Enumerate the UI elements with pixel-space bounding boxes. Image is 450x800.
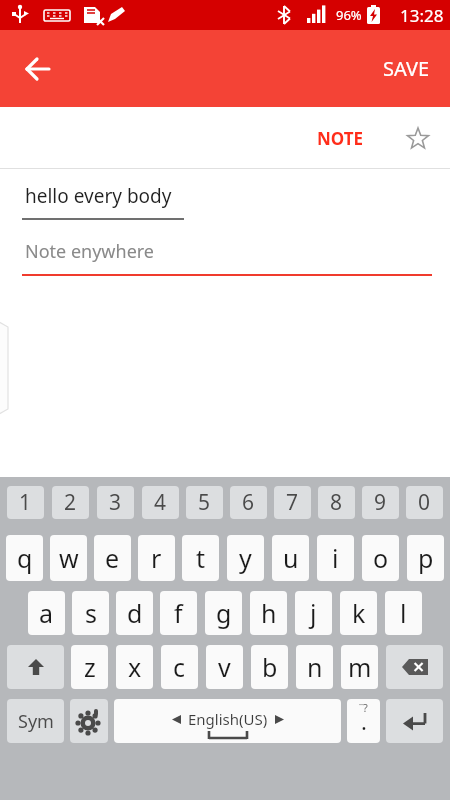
button[interactable] <box>386 699 443 743</box>
staticText: . <box>361 706 367 736</box>
staticText: 3 <box>109 488 122 517</box>
button[interactable]: 3 <box>97 486 134 519</box>
button[interactable]: 9 <box>362 486 399 519</box>
button[interactable]: 4 <box>142 486 179 519</box>
staticText: q <box>17 541 33 575</box>
staticText: hello every body <box>25 183 172 209</box>
staticText: a <box>39 596 54 630</box>
staticText: 5 <box>198 488 211 517</box>
button[interactable]: c <box>161 645 198 689</box>
staticText: 8 <box>330 488 343 517</box>
button[interactable]: 7 <box>274 486 311 519</box>
button[interactable]: g <box>205 591 242 635</box>
button[interactable]: y <box>227 535 264 581</box>
button[interactable]: Back <box>14 45 62 93</box>
staticText: f <box>174 596 183 630</box>
staticText: 13:28 <box>400 4 444 27</box>
button[interactable]: o <box>362 535 399 581</box>
staticText: NOTE <box>317 127 364 150</box>
button[interactable]: s <box>72 591 109 635</box>
staticText: p <box>418 541 434 575</box>
button[interactable]: r <box>138 535 175 581</box>
button[interactable]: f <box>160 591 197 635</box>
button[interactable] <box>70 699 108 743</box>
button[interactable]: w <box>50 535 87 581</box>
staticText: n <box>307 650 323 684</box>
staticText: b <box>262 650 278 684</box>
button[interactable]: 1 <box>7 486 44 519</box>
staticText: d <box>127 596 143 630</box>
button[interactable]: Sym <box>7 699 64 743</box>
staticText: v <box>218 650 231 684</box>
button[interactable]: Favorite <box>400 121 436 157</box>
button[interactable]: . <box>347 699 380 743</box>
staticText: c <box>173 650 186 684</box>
button[interactable]: x <box>116 645 153 689</box>
button[interactable]: a <box>28 591 65 635</box>
staticText: u <box>283 541 299 575</box>
staticText: 7 <box>286 488 299 517</box>
button[interactable]: u <box>272 535 309 581</box>
button[interactable]: v <box>206 645 243 689</box>
button[interactable]: m <box>341 645 378 689</box>
staticText: SAVE <box>383 55 430 82</box>
staticText: y <box>239 541 252 575</box>
button[interactable]: Note enywhere <box>0 239 450 276</box>
button[interactable]: NOTE <box>311 119 370 158</box>
other: Settings <box>70 699 108 743</box>
button[interactable]: b <box>251 645 288 689</box>
button[interactable]: d <box>116 591 153 635</box>
button[interactable]: h <box>250 591 287 635</box>
staticText: w <box>59 541 79 575</box>
staticText: Sym <box>18 709 54 734</box>
staticText: o <box>373 541 389 575</box>
staticText: 2 <box>64 488 77 517</box>
staticText: ˙˙? <box>359 700 368 715</box>
button[interactable]: 8 <box>318 486 355 519</box>
button[interactable]: hello every body <box>0 183 450 220</box>
staticText: e <box>105 541 120 575</box>
button[interactable]: e <box>94 535 131 581</box>
staticText: 6 <box>242 488 255 517</box>
staticText: 4 <box>154 488 167 517</box>
button[interactable]: n <box>296 645 333 689</box>
staticText: z <box>84 650 96 684</box>
staticText: Note enywhere <box>25 239 155 264</box>
other: Backspace <box>386 645 443 689</box>
button[interactable]: l <box>385 591 422 635</box>
staticText: l <box>400 596 407 630</box>
button[interactable] <box>7 645 64 689</box>
staticText: 1 <box>19 488 32 517</box>
staticText: g <box>216 596 232 630</box>
staticText: 9 <box>374 488 387 517</box>
button[interactable]: SAVE <box>373 43 440 94</box>
button[interactable]: z <box>71 645 108 689</box>
button[interactable]: t <box>182 535 219 581</box>
button[interactable]: 0 <box>406 486 443 519</box>
staticText: i <box>332 541 339 575</box>
button[interactable]: q <box>6 535 43 581</box>
button[interactable]: 6 <box>230 486 267 519</box>
staticText: h <box>261 596 277 630</box>
staticText: x <box>128 650 142 684</box>
button[interactable]: i <box>317 535 354 581</box>
staticText: t <box>196 541 206 575</box>
button[interactable]: Space <box>114 699 341 743</box>
staticText: r <box>151 541 162 575</box>
staticText: 0 <box>418 488 431 517</box>
staticText: j <box>310 596 317 630</box>
staticText: k <box>352 596 366 630</box>
button[interactable]: k <box>340 591 377 635</box>
button[interactable]: j <box>295 591 332 635</box>
button[interactable]: p <box>407 535 444 581</box>
other: Enter <box>386 699 443 743</box>
button[interactable]: 2 <box>52 486 89 519</box>
staticText: English(US) <box>188 709 268 729</box>
staticText: 96% <box>336 6 362 24</box>
staticText: s <box>85 596 97 630</box>
button[interactable]: 5 <box>186 486 223 519</box>
button[interactable] <box>386 645 443 689</box>
staticText: m <box>348 650 372 684</box>
